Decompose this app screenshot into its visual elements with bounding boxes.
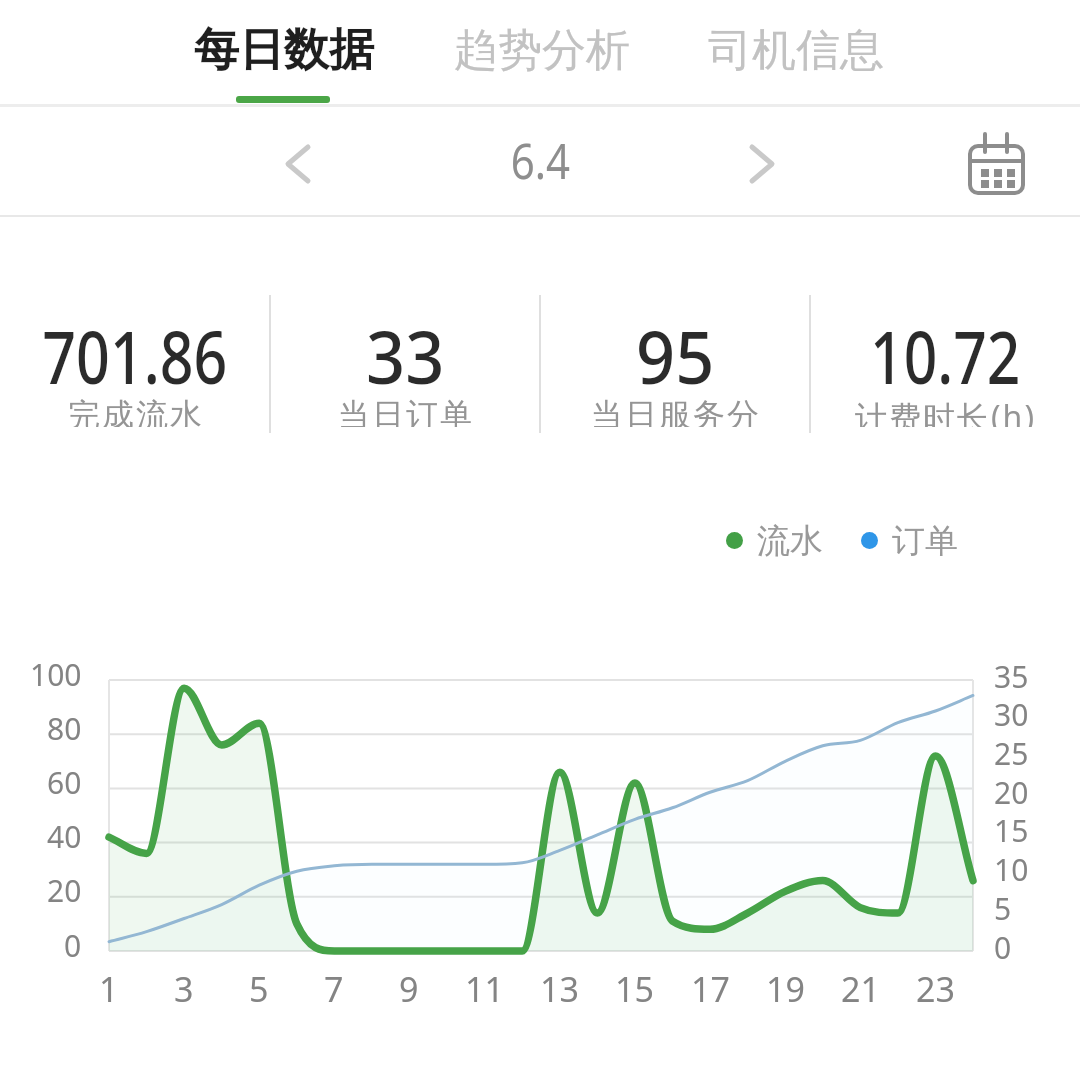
button[interactable]: 每日数据 <box>184 0 384 100</box>
staticText: 当日订单 <box>337 395 473 427</box>
staticText: 趋势分析 <box>454 23 630 78</box>
staticText: 13 <box>540 966 579 1008</box>
staticText: 701.86 <box>42 307 228 395</box>
staticText: 5 <box>994 888 1012 929</box>
staticText: 21 <box>841 966 880 1008</box>
staticText: 每日数据 <box>194 22 374 79</box>
staticText: 60 <box>47 762 82 803</box>
staticText: 0 <box>64 925 82 966</box>
staticText: 95 <box>636 307 715 395</box>
staticText: 6.4 <box>511 126 570 194</box>
staticText: 100 <box>30 654 82 695</box>
button[interactable] <box>732 134 792 194</box>
button[interactable] <box>950 126 1040 208</box>
staticText: 计费时长(h) <box>855 395 1036 427</box>
staticText: 1 <box>99 966 119 1008</box>
staticText: 20 <box>994 772 1029 813</box>
staticText: 25 <box>994 733 1029 774</box>
button[interactable] <box>268 134 328 194</box>
staticText: 17 <box>691 966 730 1008</box>
staticText: 20 <box>47 870 82 911</box>
staticText: 11 <box>465 966 504 1008</box>
staticText: 80 <box>47 708 82 749</box>
staticText: 3 <box>174 966 194 1008</box>
staticText: 19 <box>766 966 805 1008</box>
staticText: 完成流水 <box>67 395 203 427</box>
staticText: 司机信息 <box>708 23 884 78</box>
staticText: 40 <box>47 816 82 857</box>
staticText: 5 <box>249 966 269 1008</box>
staticText: 9 <box>399 966 419 1008</box>
button[interactable] <box>810 290 1080 440</box>
staticText: 23 <box>916 966 955 1008</box>
staticText: 33 <box>366 307 445 395</box>
staticText: 15 <box>994 810 1029 851</box>
staticText: 流水 <box>757 520 823 560</box>
staticText: 30 <box>994 694 1029 735</box>
button[interactable] <box>861 532 878 549</box>
staticText: 10.72 <box>870 307 1021 395</box>
staticText: 35 <box>994 656 1029 697</box>
staticText: 15 <box>615 966 654 1008</box>
staticText: 7 <box>324 966 344 1008</box>
button[interactable] <box>270 290 540 440</box>
button[interactable] <box>0 290 270 440</box>
staticText: 当日服务分 <box>590 395 760 427</box>
button[interactable]: 趋势分析 <box>442 0 642 100</box>
staticText: 10 <box>994 849 1029 890</box>
staticText: 0 <box>994 927 1012 968</box>
button[interactable]: 司机信息 <box>696 0 896 100</box>
staticText: 订单 <box>892 520 958 560</box>
button[interactable] <box>540 290 810 440</box>
button[interactable] <box>726 532 743 549</box>
